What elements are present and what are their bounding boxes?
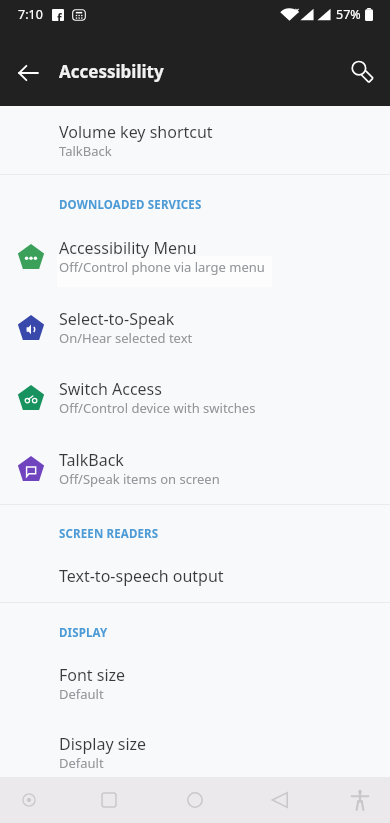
- button[interactable]: Font size: [0, 664, 390, 708]
- button[interactable]: Accessibility: [337, 777, 383, 823]
- button[interactable]: Volume key shortcut: [0, 121, 390, 165]
- staticText: f: [57, 10, 62, 22]
- button[interactable]: Display size: [0, 733, 390, 777]
- button[interactable]: Recent apps: [86, 777, 132, 823]
- button[interactable]: Back: [257, 777, 303, 823]
- button[interactable]: Select-to-Speak: [0, 308, 390, 379]
- staticText: TalkBack: [59, 142, 112, 160]
- staticText: Off/Control phone via large menu: [59, 258, 265, 276]
- button[interactable]: Text-to-speech output: [0, 565, 390, 591]
- staticText: Accessibility: [59, 60, 164, 83]
- button[interactable]: Home: [172, 777, 218, 823]
- staticText: On/Hear selected text: [59, 329, 193, 347]
- button[interactable]: TalkBack: [0, 449, 390, 520]
- staticText: Volume key shortcut: [59, 121, 213, 143]
- staticText: Display size: [59, 733, 147, 755]
- staticText: Default: [59, 685, 104, 703]
- button[interactable]: Back: [11, 56, 45, 90]
- staticText: 57%: [336, 6, 361, 23]
- staticText: Default: [59, 754, 104, 772]
- button[interactable]: Accessibility Menu: [0, 237, 390, 308]
- staticText: Accessibility Menu: [59, 237, 197, 259]
- staticText: Off/Speak items on screen: [59, 470, 220, 488]
- staticText: Font size: [59, 664, 126, 686]
- button[interactable]: Switch Access: [0, 378, 390, 449]
- staticText: DOWNLOADED SERVICES: [59, 197, 202, 213]
- staticText: SCREEN READERS: [59, 526, 159, 542]
- staticText: Switch Access: [59, 378, 162, 400]
- staticText: Text-to-speech output: [59, 565, 224, 587]
- staticText: 7:10: [18, 6, 43, 23]
- button[interactable]: Search: [341, 52, 381, 92]
- staticText: Off/Control device with switches: [59, 399, 256, 417]
- staticText: TalkBack: [59, 449, 124, 471]
- staticText: DISPLAY: [59, 625, 108, 641]
- button[interactable]: Assistant: [6, 777, 52, 823]
- staticText: Select-to-Speak: [59, 308, 175, 330]
